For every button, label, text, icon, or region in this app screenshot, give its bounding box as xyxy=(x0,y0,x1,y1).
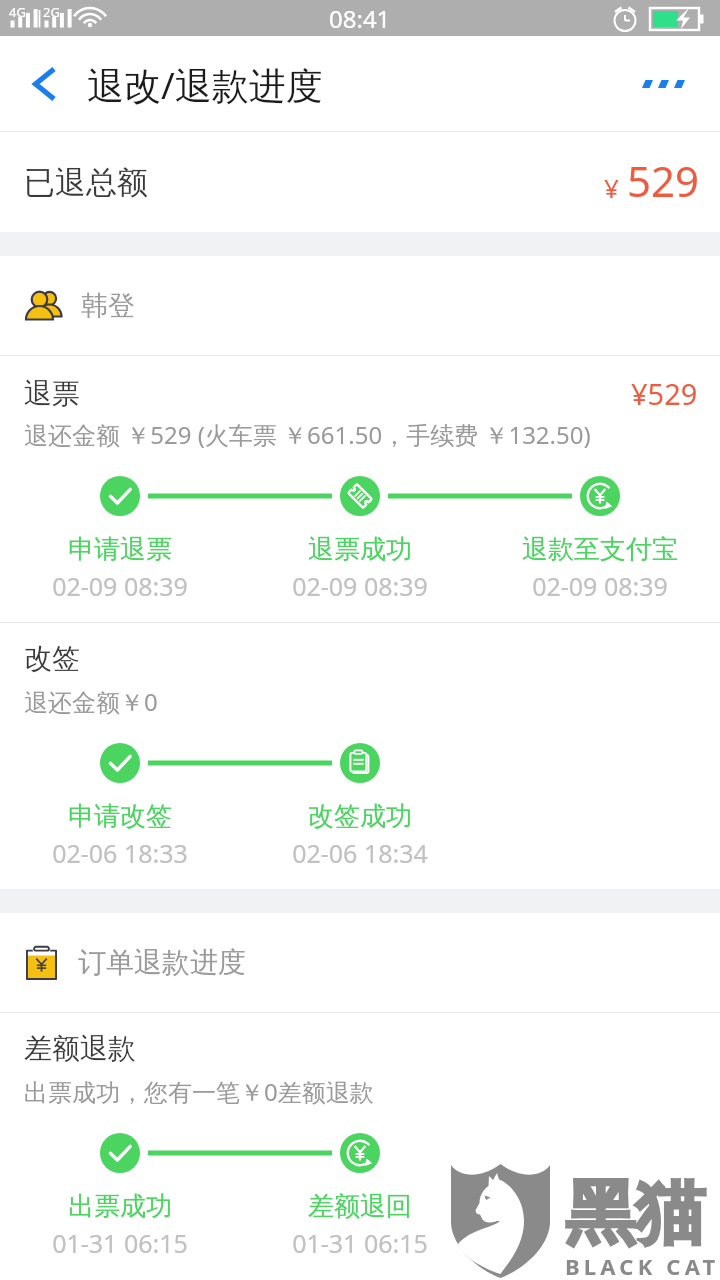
staticText: 02-06 18:33 xyxy=(52,836,188,870)
staticText: 退票成功 xyxy=(308,533,412,566)
staticText: 黑猫 xyxy=(565,1170,705,1258)
button[interactable]: 订单退款进度 xyxy=(0,913,720,1012)
staticText: 02-09 08:39 xyxy=(532,569,668,603)
button[interactable]: 韩登 xyxy=(0,256,720,355)
staticText: 01-31 06:15 xyxy=(292,1226,428,1260)
staticText: 退改/退款进度 xyxy=(87,59,323,110)
staticText: 02-09 08:39 xyxy=(52,569,188,603)
staticText: 申请退票 xyxy=(68,533,172,566)
button[interactable]: 已退总额 xyxy=(0,132,720,232)
staticText: 改签 xyxy=(24,641,80,676)
staticText: 差额退款 xyxy=(24,1031,136,1066)
staticText: 出票成功，您有一笔￥0差额退款 xyxy=(24,1075,374,1108)
staticText: 2G xyxy=(43,3,60,21)
button[interactable]: More options xyxy=(620,36,720,132)
staticText: 订单退款进度 xyxy=(78,945,246,980)
staticText: 退还金额 ￥529 (火车票 ￥661.50，手续费 ￥132.50) xyxy=(24,418,591,451)
button[interactable]: 退票 xyxy=(0,356,720,622)
button[interactable]: Back xyxy=(0,36,88,132)
staticText: 退款至支付宝 xyxy=(522,533,678,566)
staticText: 02-06 18:34 xyxy=(292,836,428,870)
staticText: ¥ xyxy=(604,170,619,205)
staticText: 出票成功 xyxy=(68,1190,172,1223)
staticText: 02-09 08:39 xyxy=(292,569,428,603)
staticText: 差额退回 xyxy=(308,1190,412,1223)
staticText: 退还金额￥0 xyxy=(24,685,158,718)
staticText: 08:41 xyxy=(329,2,391,35)
staticText: 529 xyxy=(627,152,700,209)
staticText: 已退总额 xyxy=(24,163,148,202)
staticText: BLACK CAT xyxy=(565,1251,720,1280)
staticText: 4G xyxy=(9,3,26,21)
staticText: 韩登 xyxy=(81,289,135,323)
staticText: 申请改签 xyxy=(68,800,172,833)
button[interactable]: 差额退款 xyxy=(0,1013,720,1279)
button[interactable]: 改签 xyxy=(0,623,720,889)
staticText: 改签成功 xyxy=(308,800,412,833)
staticText: ¥529 xyxy=(631,374,698,413)
staticText: 01-31 06:15 xyxy=(52,1226,188,1260)
staticText: 退票 xyxy=(24,376,80,411)
